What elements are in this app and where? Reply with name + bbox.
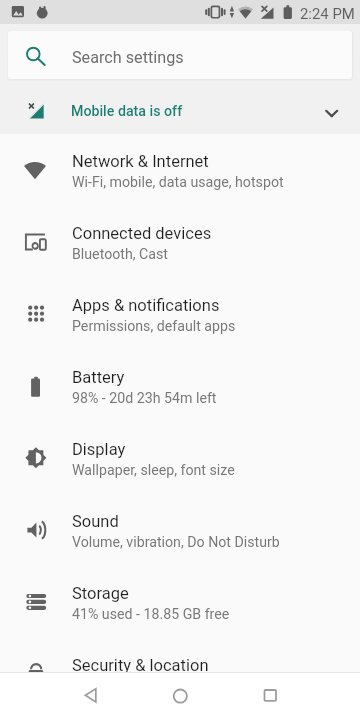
button[interactable]: Network & Internet (0, 134, 360, 206)
staticText: Network & Internet (72, 152, 209, 171)
button[interactable]: Mobile data is off (0, 87, 360, 134)
button[interactable]: Home (156, 672, 204, 720)
staticText: Connected devices (72, 224, 212, 243)
staticText: Security & location (72, 656, 209, 675)
button[interactable]: Back (66, 672, 114, 720)
staticText: 41% used - 18.85 GB free (72, 606, 230, 623)
staticText: Display (72, 440, 126, 459)
staticText: Wi-Fi, mobile, data usage, hotspot (72, 174, 284, 191)
staticText: Wallpaper, sleep, font size (72, 462, 235, 479)
button[interactable]: Apps & notifications (0, 278, 360, 350)
staticText: Volume, vibration, Do Not Disturb (72, 534, 280, 551)
button[interactable]: Storage (0, 566, 360, 638)
button[interactable]: Sound (0, 494, 360, 566)
staticText: Bluetooth, Cast (72, 246, 169, 263)
button[interactable]: Connected devices (0, 206, 360, 278)
staticText: Sound (72, 512, 119, 531)
button[interactable]: Battery (0, 350, 360, 422)
button[interactable]: Security & location (0, 638, 360, 710)
staticText: 2:24 PM (300, 5, 355, 22)
button[interactable]: Display (0, 422, 360, 494)
staticText: Apps & notifications (72, 296, 220, 315)
button[interactable]: Search settings (8, 31, 352, 79)
staticText: Permissions, default apps (72, 318, 236, 335)
staticText: Storage (72, 584, 129, 603)
staticText: Mobile data is off (71, 103, 183, 120)
staticText: Search settings (72, 48, 184, 67)
staticText: Battery (72, 368, 125, 387)
button[interactable]: Recents (246, 672, 294, 720)
staticText: Screen lock, fingerprint (72, 678, 217, 695)
staticText: 98% - 20d 23h 54m left (72, 390, 217, 407)
